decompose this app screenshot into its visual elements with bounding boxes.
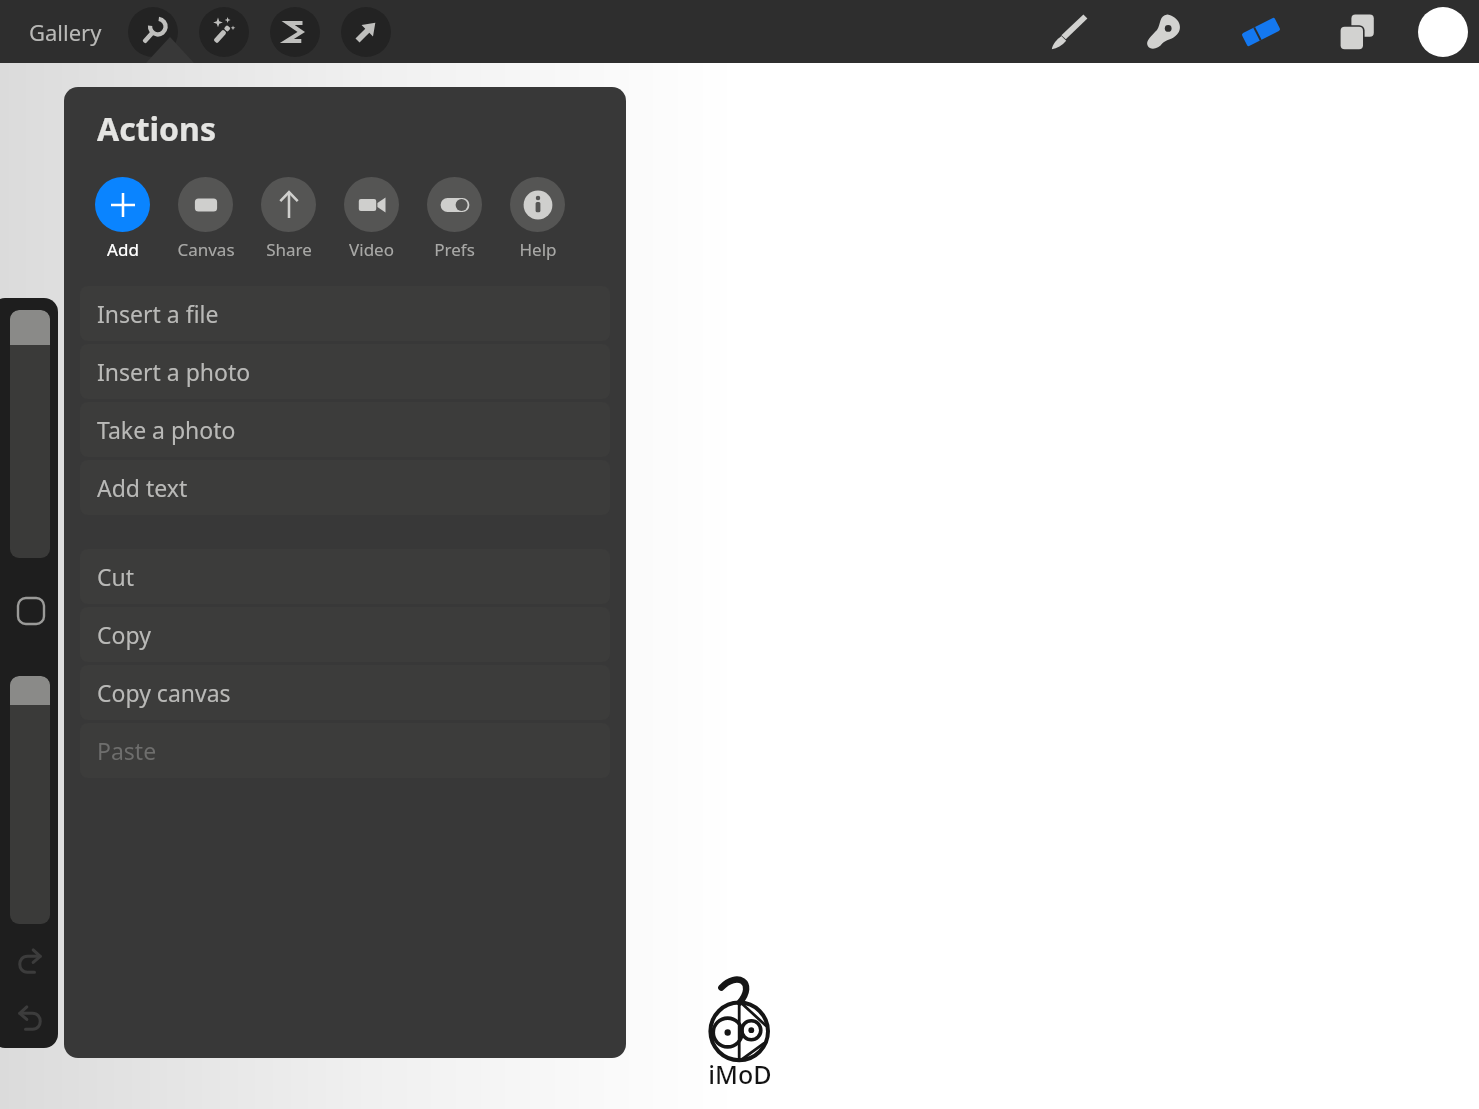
staticText: Insert a photo xyxy=(97,356,251,387)
staticText: Share xyxy=(266,238,312,261)
button[interactable]: Slider xyxy=(10,310,50,558)
button[interactable]: Paste xyxy=(80,723,610,778)
button[interactable]: Copy xyxy=(80,607,610,662)
button[interactable]: Cut xyxy=(80,549,610,604)
button[interactable]: Modify xyxy=(18,598,44,624)
button[interactable]: Selection xyxy=(270,7,320,57)
staticText: Add xyxy=(107,238,139,261)
button[interactable]: Insert a photo xyxy=(80,344,610,399)
staticText: Gallery xyxy=(29,17,102,47)
button[interactable]: Slider xyxy=(10,676,50,924)
button[interactable]: Insert a file xyxy=(80,286,610,341)
staticText: Canvas xyxy=(177,238,235,261)
staticText: Help xyxy=(519,238,557,261)
button[interactable]: Paint xyxy=(1042,5,1096,59)
button[interactable]: Smudge xyxy=(1138,5,1192,59)
staticText: iMoD xyxy=(708,1057,772,1091)
button[interactable]: Adjustments xyxy=(199,7,249,57)
button[interactable]: Add text xyxy=(80,460,610,515)
staticText: Add text xyxy=(97,472,188,503)
button[interactable]: Color xyxy=(1418,7,1468,57)
button[interactable]: Transform xyxy=(341,7,391,57)
staticText: Insert a file xyxy=(97,298,219,329)
button[interactable]: Layers xyxy=(1330,5,1384,59)
button[interactable]: Canvas xyxy=(176,177,235,261)
staticText: Copy xyxy=(97,619,151,650)
button[interactable]: Share xyxy=(259,177,318,261)
staticText: Paste xyxy=(97,735,157,766)
staticText: Prefs xyxy=(434,238,475,261)
staticText: Actions xyxy=(97,107,216,151)
button[interactable]: Undo xyxy=(10,944,50,984)
button[interactable]: Help xyxy=(508,177,567,261)
button[interactable]: Erase xyxy=(1234,5,1288,59)
button[interactable]: Video xyxy=(342,177,401,261)
staticText: Copy canvas xyxy=(97,677,231,708)
button[interactable]: Take a photo xyxy=(80,402,610,457)
staticText: Take a photo xyxy=(97,414,236,445)
staticText: Cut xyxy=(97,561,135,592)
staticText: Video xyxy=(349,238,394,261)
button[interactable]: Copy canvas xyxy=(80,665,610,720)
button[interactable]: Actions xyxy=(128,7,178,57)
button[interactable]: Add xyxy=(93,177,152,261)
button[interactable]: Gallery xyxy=(25,9,106,55)
button[interactable]: Prefs xyxy=(425,177,484,261)
button[interactable]: Redo xyxy=(10,1001,50,1041)
